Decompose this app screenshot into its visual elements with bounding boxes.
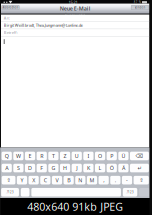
staticText: Senden <box>134 6 145 9</box>
button[interactable]: Shift <box>2 176 15 184</box>
button[interactable]: .?123 <box>123 188 137 196</box>
staticText: .?123 <box>6 190 14 194</box>
button[interactable]: R <box>37 152 47 160</box>
button[interactable]: Y <box>17 176 27 184</box>
staticText: P <box>110 152 113 159</box>
button[interactable]: I <box>83 152 93 160</box>
staticText: G <box>51 164 55 172</box>
button[interactable]: B <box>64 176 74 184</box>
staticText: W <box>16 152 21 159</box>
button[interactable]: Q <box>2 152 12 160</box>
staticText: O <box>98 152 102 159</box>
button[interactable]: - <box>122 176 132 184</box>
button[interactable]: Ö <box>107 164 117 172</box>
staticText: Betreff: <box>4 30 18 35</box>
button[interactable]: J <box>72 164 82 172</box>
staticText: C <box>44 177 47 184</box>
button[interactable]: Emoji <box>21 188 29 196</box>
staticText: D <box>28 164 32 172</box>
staticText: 480x640 91kb JPEG <box>27 199 123 214</box>
button[interactable]: G <box>48 164 58 172</box>
staticText: T <box>52 152 55 159</box>
button[interactable]: Ä <box>118 164 128 172</box>
staticText: B <box>67 177 70 184</box>
button[interactable]: .?123 <box>1 188 19 196</box>
button[interactable]: D <box>25 164 35 172</box>
staticText: .?123 <box>126 190 134 194</box>
staticText: Ö <box>110 164 114 172</box>
staticText: . <box>115 177 116 184</box>
button[interactable]: Backspace <box>130 152 149 160</box>
button[interactable]: E <box>25 152 35 160</box>
button[interactable]: T <box>48 152 58 160</box>
button[interactable]: P <box>107 152 117 160</box>
staticText: U <box>75 152 79 159</box>
button[interactable]: Shift <box>134 176 149 184</box>
button[interactable]: K <box>83 164 93 172</box>
button[interactable]: A <box>2 164 12 172</box>
staticText: K <box>87 164 90 172</box>
staticText: J <box>76 164 77 172</box>
staticText: L <box>99 164 102 172</box>
staticText: ⇧ <box>7 177 11 183</box>
staticText: Posteingang <box>67 12 85 15</box>
staticText: - <box>126 177 128 184</box>
button[interactable]: Space <box>31 188 121 196</box>
button[interactable]: M <box>87 176 97 184</box>
button[interactable]: S <box>13 164 23 172</box>
staticText: S <box>17 164 20 172</box>
button[interactable]: H <box>60 164 70 172</box>
button[interactable]: W <box>13 152 23 160</box>
staticText: H <box>63 164 67 172</box>
staticText: E <box>29 152 32 159</box>
button[interactable]: . <box>110 176 120 184</box>
staticText: F <box>40 164 43 172</box>
button[interactable]: X <box>29 176 39 184</box>
button[interactable]: , <box>99 176 109 184</box>
staticText: N <box>78 177 82 184</box>
button[interactable]: F <box>37 164 47 172</box>
staticText: Abbrechen <box>2 6 18 9</box>
staticText: , <box>103 177 104 184</box>
staticText: ⌫ <box>135 153 143 159</box>
staticText: M <box>89 177 94 184</box>
staticText: 87 % <box>134 0 141 4</box>
staticText: Ä <box>122 164 125 172</box>
staticText: Z <box>64 152 67 159</box>
staticText: An: <box>4 15 10 21</box>
button[interactable]: V <box>52 176 62 184</box>
staticText: ⇧ <box>139 177 143 183</box>
button[interactable]: U <box>72 152 82 160</box>
button[interactable]: Senden <box>131 5 149 10</box>
staticText: A <box>5 164 8 172</box>
staticText: Ü <box>121 152 125 159</box>
staticText: I <box>87 152 89 159</box>
button[interactable]: L <box>95 164 105 172</box>
button[interactable]: Z <box>60 152 70 160</box>
staticText: Q <box>5 152 9 159</box>
staticText: Birgit Weißbrodt, Thea-Jungmann@t-online… <box>4 23 83 28</box>
button[interactable]: Abbrechen <box>2 5 19 10</box>
staticText: R <box>40 152 43 159</box>
button[interactable]: Ü <box>118 152 128 160</box>
staticText: ↵ <box>137 165 141 171</box>
button[interactable]: Return <box>130 164 149 172</box>
button[interactable]: O <box>95 152 105 160</box>
staticText: 15:21 <box>68 0 77 5</box>
staticText: X <box>32 177 35 184</box>
staticText: V <box>55 177 58 184</box>
button[interactable]: N <box>75 176 85 184</box>
button[interactable]: C <box>40 176 50 184</box>
staticText: Neue E-Mail <box>60 5 91 12</box>
staticText: Y <box>20 177 23 184</box>
